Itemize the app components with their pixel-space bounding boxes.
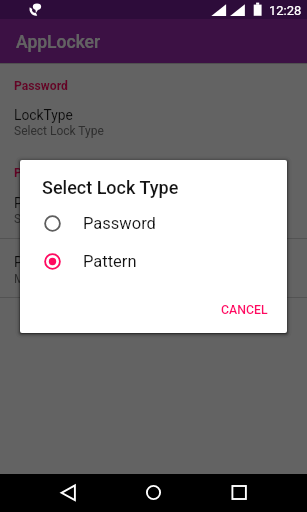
staticText: Select Lock Type	[42, 177, 179, 198]
button[interactable]: Password	[0, 71, 307, 96]
button[interactable]: Pattern	[20, 242, 287, 280]
button[interactable]: Recent apps	[218, 474, 261, 512]
staticText: Pattern	[14, 166, 55, 180]
staticText: Password	[14, 79, 68, 93]
staticText: Select Lock Type	[14, 124, 104, 138]
button[interactable]: Home	[132, 474, 175, 512]
staticText: CANCEL	[221, 303, 268, 317]
staticText: LockType	[14, 107, 73, 123]
button[interactable]: Password	[20, 204, 287, 242]
button[interactable]: LockType	[0, 98, 307, 141]
staticText: Set unlock pattern	[14, 212, 111, 226]
button[interactable]: Pattern	[0, 186, 307, 229]
staticText: Manage PIN code	[14, 272, 109, 286]
button[interactable]: Pattern	[0, 158, 307, 183]
staticText: Pattern	[83, 252, 137, 271]
button[interactable]: CANCEL	[209, 292, 275, 323]
button[interactable]: PIN	[0, 245, 307, 288]
staticText: PIN	[14, 254, 37, 270]
staticText: 12:28	[269, 3, 302, 18]
staticText: AppLocker	[16, 32, 101, 53]
button[interactable]: Back	[47, 474, 90, 512]
staticText: Pattern	[14, 195, 59, 211]
staticText: Password	[83, 214, 156, 233]
